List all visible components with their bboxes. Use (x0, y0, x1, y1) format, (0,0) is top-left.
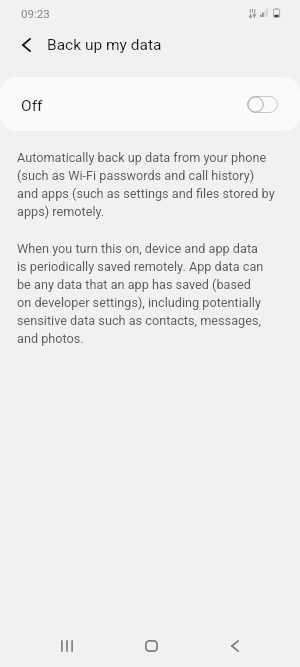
staticText: Back up my data (47, 36, 162, 54)
button[interactable]: Home (127, 624, 175, 667)
button[interactable]: Off (0, 77, 300, 131)
button[interactable]: Back (211, 624, 259, 667)
staticText: When you turn this on, device and app da… (17, 239, 264, 347)
staticText: Automatically back up data from your pho… (17, 148, 275, 220)
staticText: 09:23 (21, 7, 50, 20)
staticText: Off (21, 97, 43, 115)
button[interactable]: Toggle back up my data (247, 96, 278, 113)
button[interactable]: Navigate up (4, 23, 48, 67)
button[interactable]: Recent apps (43, 624, 91, 667)
